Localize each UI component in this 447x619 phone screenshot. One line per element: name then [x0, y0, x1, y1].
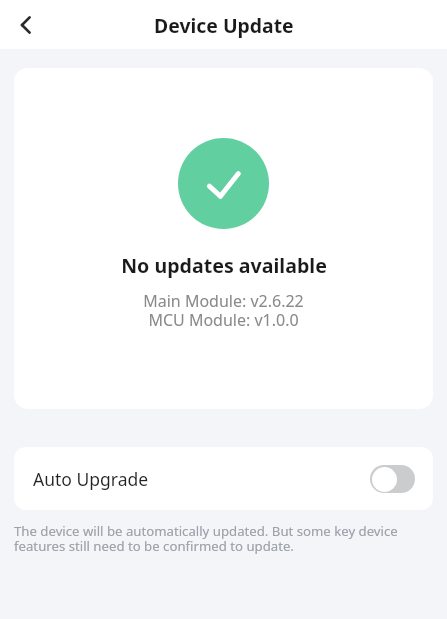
staticText: Main Module: v2.6.22 MCU Module: v1.0.0 [143, 290, 304, 330]
button[interactable]: Back [0, 0, 52, 49]
button[interactable]: Auto Upgrade toggle, off [370, 465, 415, 493]
staticText: No updates available [121, 252, 327, 279]
button[interactable]: Auto Upgrade [14, 447, 433, 510]
staticText: The device will be automatically updated… [14, 522, 433, 555]
staticText: Auto Upgrade [33, 467, 149, 491]
staticText: Device Update [154, 12, 294, 38]
